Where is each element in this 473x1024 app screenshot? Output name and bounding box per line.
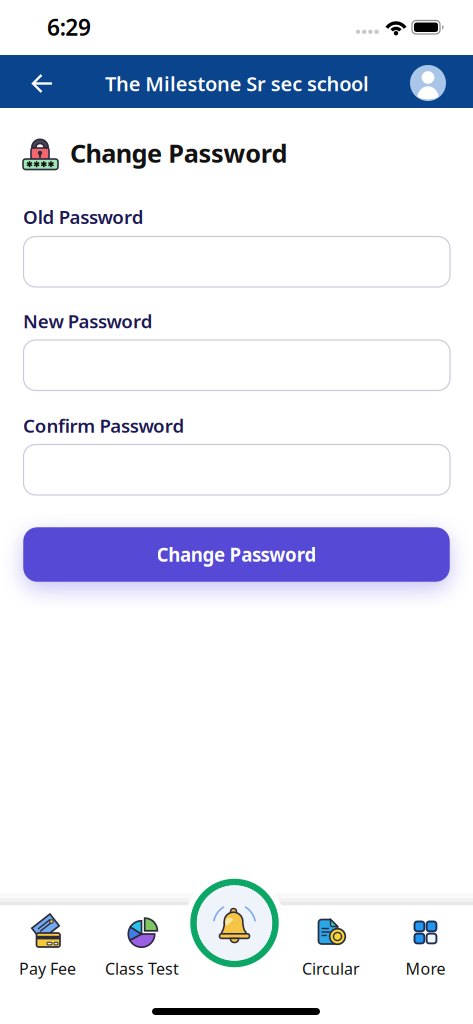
staticText: Confirm Password [23,413,184,438]
button[interactable]: Profile [409,64,446,101]
button[interactable]: Class Test [97,907,187,977]
staticText: Change Password [157,542,316,567]
staticText: Circular [302,958,360,979]
staticText: Change Password [70,136,287,170]
button[interactable]: Circular [291,907,371,977]
button[interactable]: Pay Fee [7,907,87,977]
button[interactable]: Back [20,61,64,105]
staticText: More [405,958,445,979]
button[interactable]: Notifications [184,873,284,973]
staticText: Class Test [105,958,179,979]
staticText: Pay Fee [19,958,76,979]
staticText: Old Password [23,204,144,229]
button[interactable]: Change Password [23,527,450,582]
staticText: 6:29 [47,12,91,42]
staticText: New Password [23,309,153,333]
button[interactable]: More [390,907,460,977]
staticText: The Milestone Sr sec school [105,70,369,97]
